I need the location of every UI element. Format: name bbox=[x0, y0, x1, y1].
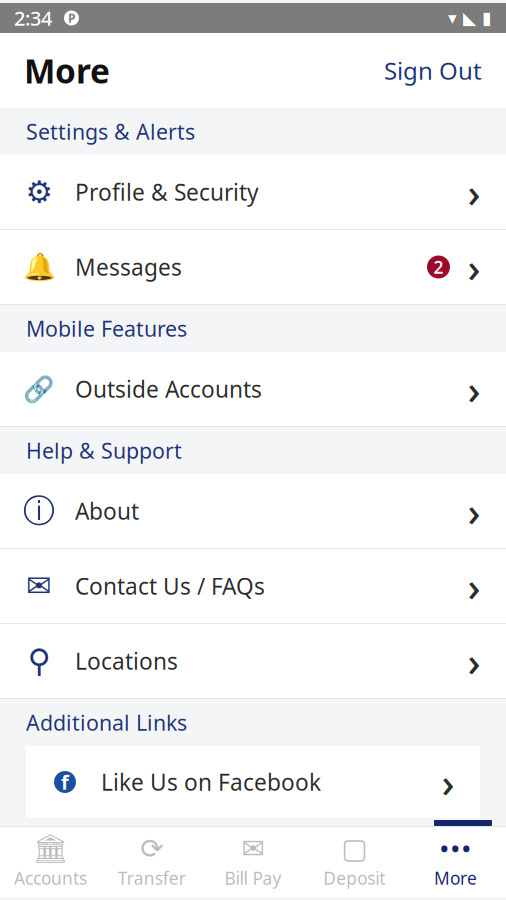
button[interactable]: ⟳ bbox=[101, 827, 202, 897]
staticText: About bbox=[75, 496, 139, 526]
staticText: › bbox=[467, 484, 480, 537]
staticText: Contact Us / FAQs bbox=[75, 571, 265, 601]
button[interactable]: ✉ bbox=[202, 827, 304, 897]
staticText: › bbox=[467, 634, 480, 687]
staticText: f bbox=[61, 769, 69, 795]
staticText: ⓘ bbox=[23, 491, 55, 531]
staticText: Locations bbox=[75, 646, 178, 676]
staticText: ••• bbox=[439, 830, 472, 867]
button[interactable]: ••• bbox=[405, 827, 506, 897]
staticText: › bbox=[467, 240, 480, 293]
button[interactable]: ⓘ bbox=[0, 474, 506, 549]
button[interactable]: 🏛 bbox=[0, 827, 101, 897]
staticText: 🏛 bbox=[33, 832, 69, 864]
staticText: Additional Links bbox=[26, 708, 187, 737]
staticText: Messages bbox=[75, 252, 182, 282]
staticText: 2:34 bbox=[14, 5, 52, 31]
staticText: Sign Out bbox=[384, 55, 482, 86]
staticText: Help & Support bbox=[26, 436, 182, 465]
staticText: More bbox=[434, 866, 477, 889]
staticText: ✉ bbox=[241, 833, 264, 864]
staticText: ✉ bbox=[26, 569, 52, 603]
staticText: 2 bbox=[433, 255, 443, 278]
staticText: ⚙ bbox=[25, 175, 52, 209]
staticText: P bbox=[68, 10, 75, 26]
staticText: Settings & Alerts bbox=[26, 117, 195, 146]
button[interactable]: 🔗 bbox=[0, 352, 506, 427]
staticText: Profile & Security bbox=[75, 177, 259, 207]
button[interactable]: ⚙ bbox=[0, 155, 506, 230]
staticText: ▢ bbox=[341, 833, 367, 864]
staticText: ⟳ bbox=[140, 833, 163, 864]
button[interactable]: Sign Out bbox=[370, 47, 482, 94]
staticText: More bbox=[24, 48, 110, 93]
staticText: Deposit bbox=[323, 866, 385, 889]
staticText: Accounts bbox=[14, 866, 87, 889]
button[interactable]: f bbox=[26, 746, 480, 818]
staticText: Transfer bbox=[118, 866, 186, 889]
button[interactable]: ✉ bbox=[0, 549, 506, 624]
staticText: 🔔 bbox=[22, 252, 55, 282]
staticText: 🔗 bbox=[23, 374, 55, 403]
staticText: › bbox=[467, 362, 480, 415]
staticText: Mobile Features bbox=[26, 314, 187, 343]
staticText: › bbox=[467, 559, 480, 612]
staticText: ⚲ bbox=[27, 643, 50, 679]
button[interactable]: 🔔 bbox=[0, 230, 506, 305]
staticText: › bbox=[467, 165, 480, 218]
staticText: Like Us on Facebook bbox=[101, 767, 321, 797]
button[interactable]: ▢ bbox=[304, 827, 405, 897]
staticText: Bill Pay bbox=[224, 866, 281, 889]
staticText: Outside Accounts bbox=[75, 374, 262, 404]
staticText: ▾ ◣ ▮ bbox=[448, 8, 492, 28]
staticText: › bbox=[441, 755, 454, 808]
button[interactable]: ⚲ bbox=[0, 624, 506, 699]
